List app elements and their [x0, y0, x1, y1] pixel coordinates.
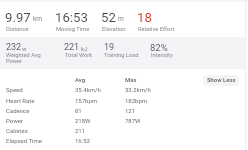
staticText: Speed	[6, 86, 23, 93]
staticText: 16:53	[75, 137, 90, 144]
staticText: Elevation	[102, 26, 126, 33]
staticText: 221	[64, 42, 80, 53]
staticText: Power	[6, 117, 23, 124]
staticText: 157bpm	[75, 97, 98, 104]
staticText: Cadence	[6, 107, 30, 114]
staticText: Max	[125, 76, 137, 83]
staticText: w	[22, 45, 27, 52]
staticText: 182bpm	[125, 97, 148, 104]
button[interactable]: Show Less	[203, 75, 239, 86]
staticText: 232	[6, 42, 22, 53]
staticText: km	[33, 15, 43, 23]
staticText: Calories	[6, 127, 28, 134]
staticText: 787W	[125, 117, 141, 124]
staticText: 35.4km/h	[75, 86, 101, 93]
staticText: 16:53	[55, 10, 88, 25]
staticText: Relative Effort	[138, 26, 175, 33]
staticText: 9.97	[5, 10, 31, 25]
staticText: 19	[104, 42, 115, 53]
staticText: 121	[125, 107, 136, 114]
staticText: Elapsed Time	[6, 137, 43, 144]
staticText: Weighted Avg	[6, 52, 41, 59]
staticText: 53.2km/h	[125, 86, 151, 93]
staticText: Training Load	[104, 52, 139, 59]
staticText: Total Work	[65, 52, 93, 59]
staticText: 81	[75, 107, 82, 114]
staticText: Intensity	[151, 52, 173, 59]
staticText: Heart Rate	[6, 97, 35, 104]
staticText: Moving Time	[56, 26, 90, 33]
staticText: 211	[75, 127, 86, 134]
staticText: 82%	[150, 42, 168, 53]
staticText: Power	[6, 58, 23, 65]
staticText: 18	[137, 10, 152, 25]
staticText: Show Less	[207, 77, 236, 84]
staticText: 218W	[75, 117, 91, 124]
staticText: m	[118, 15, 124, 23]
staticText: 52	[101, 10, 116, 25]
staticText: kJ	[81, 45, 88, 52]
staticText: Distance	[6, 26, 29, 33]
staticText: Avg	[75, 76, 86, 83]
